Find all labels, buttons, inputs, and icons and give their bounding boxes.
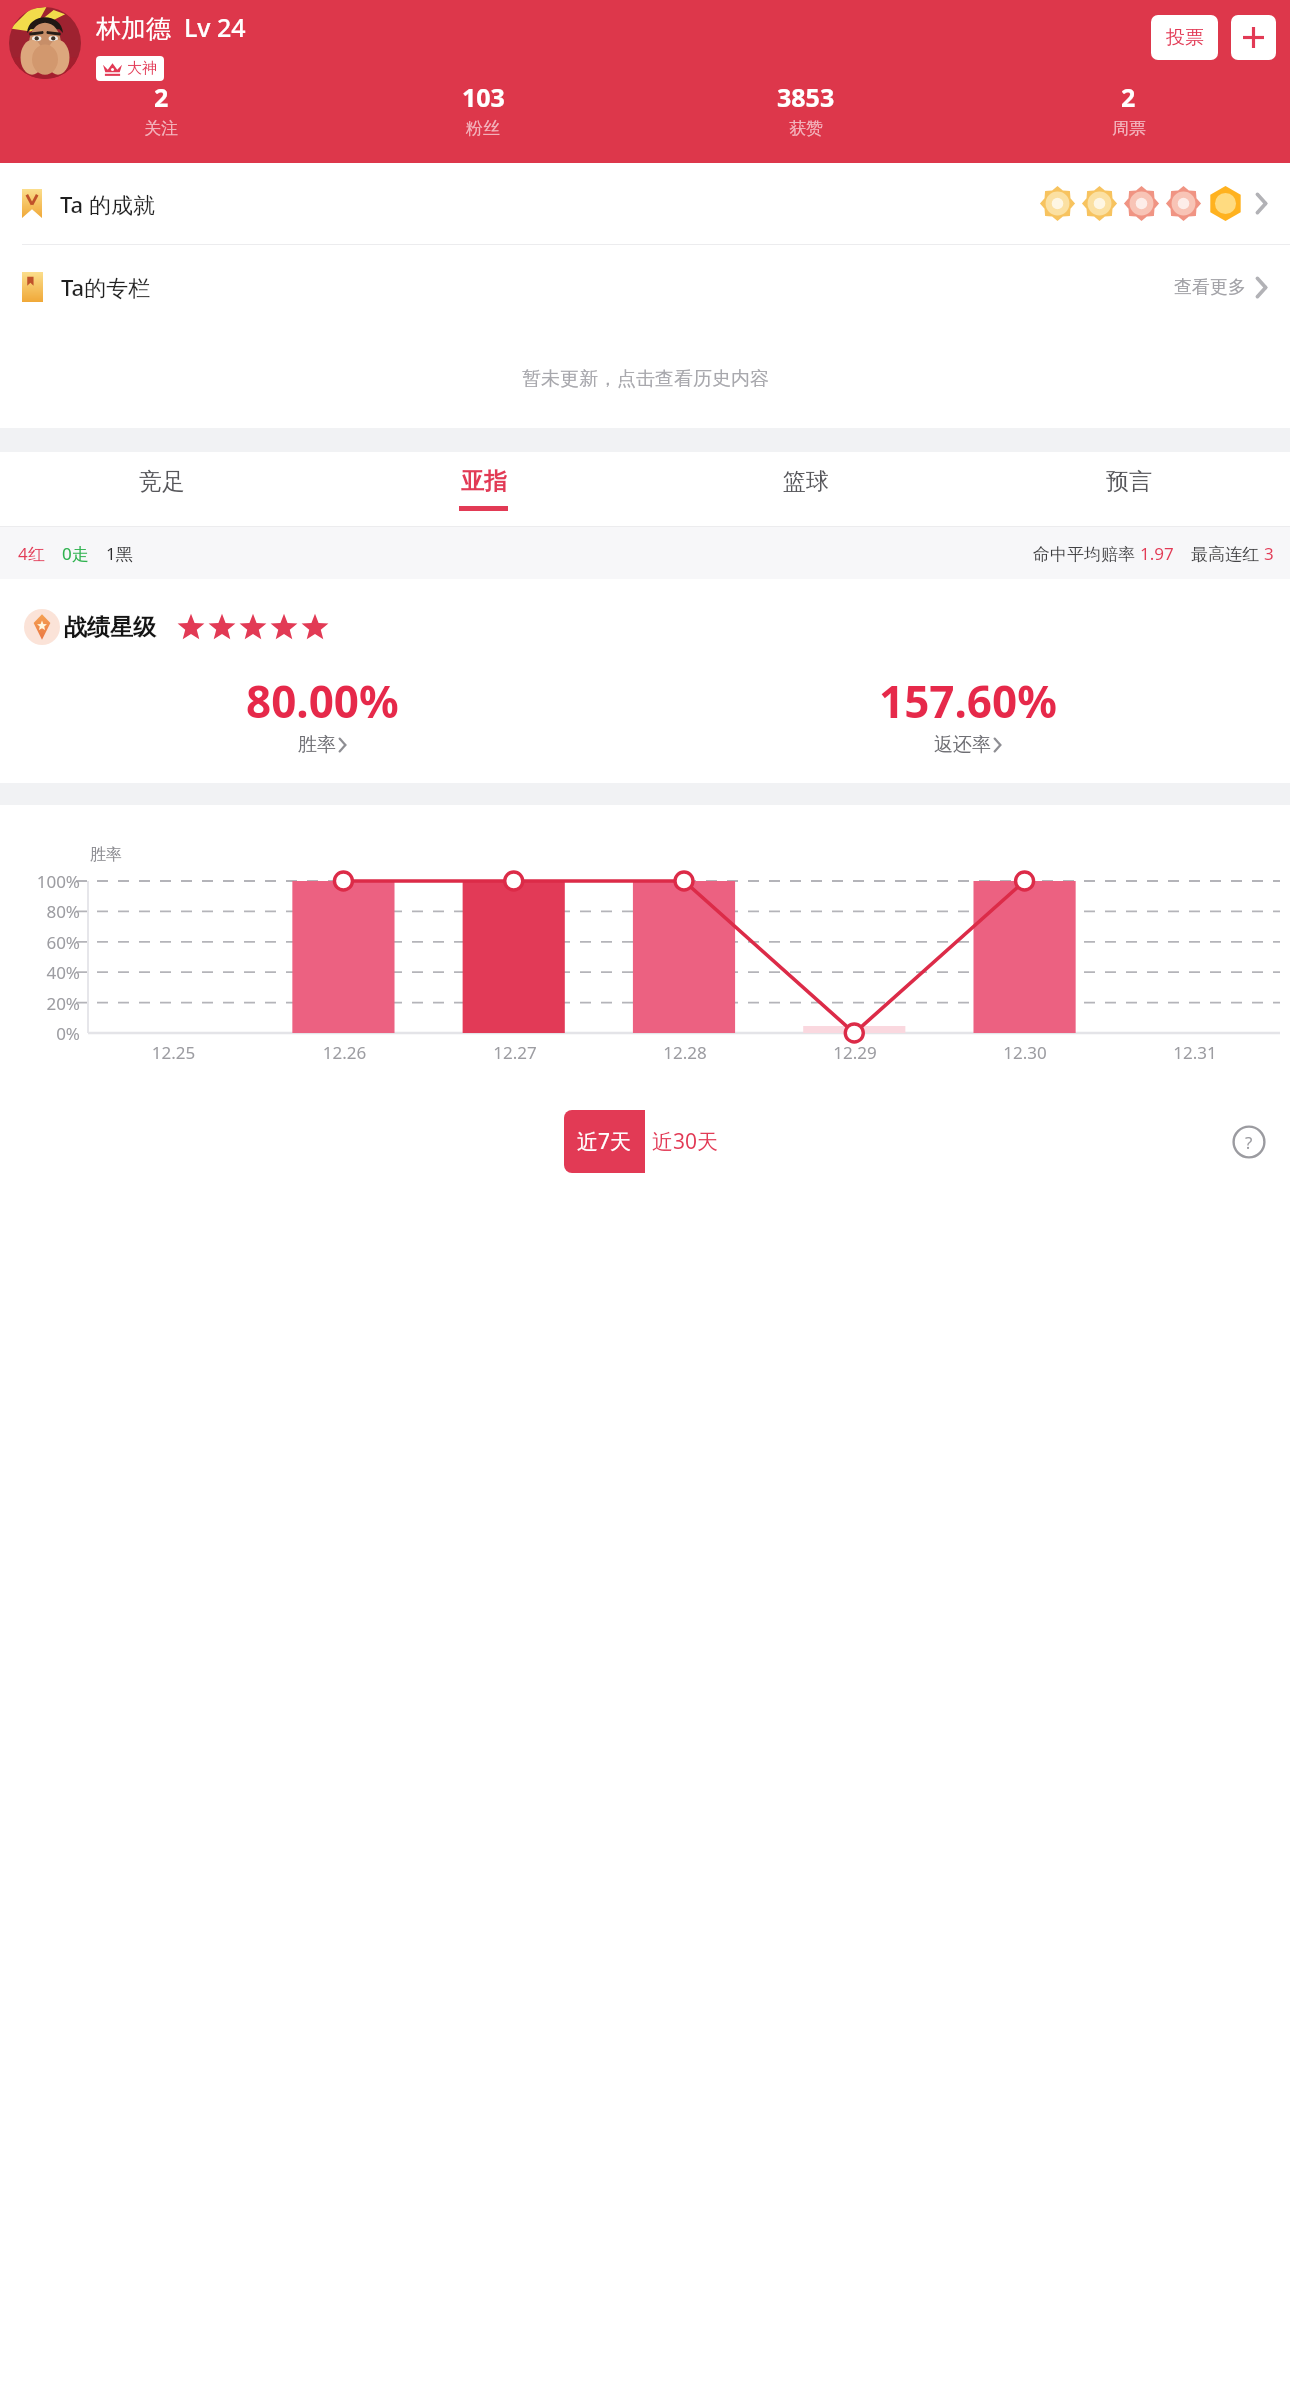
staticText: 返还率 — [934, 733, 991, 757]
staticText: 0% — [14, 1022, 80, 1045]
staticText: 胜率 — [298, 733, 336, 757]
staticText: 查看更多 — [1174, 276, 1246, 299]
staticText: 粉丝 — [466, 118, 500, 139]
staticText: 暂未更新，点击查看历史内容 — [522, 367, 769, 391]
staticText: 大神 — [127, 59, 157, 78]
button[interactable]: 2 — [0, 80, 322, 139]
button[interactable]: 投票 — [1151, 15, 1218, 60]
button[interactable]: Add — [1231, 15, 1276, 60]
staticText: 命中平均赔率 — [1033, 542, 1140, 565]
staticText: 周票 — [1112, 118, 1146, 139]
staticText: 战绩星级 — [64, 613, 156, 642]
button[interactable]: 157.60% — [645, 671, 1290, 757]
staticText: 100% — [14, 870, 80, 893]
staticText: 157.60% — [879, 671, 1057, 731]
button[interactable]: 亚指 — [322, 452, 644, 526]
button[interactable]: Ta 的成就 — [0, 163, 1290, 244]
staticText: 竞足 — [139, 467, 185, 496]
button[interactable]: 预言 — [967, 452, 1290, 526]
staticText: 12.29 — [770, 1041, 940, 1064]
staticText: 2 — [1121, 80, 1136, 114]
staticText: 103 — [462, 80, 505, 114]
staticText: 亚指 — [461, 467, 507, 496]
staticText: 0走 — [62, 542, 89, 565]
staticText: 12.25 — [88, 1041, 259, 1064]
staticText: 关注 — [144, 118, 178, 139]
staticText: 3 — [1264, 542, 1274, 565]
staticText: 4红 — [18, 542, 45, 565]
staticText: 20% — [14, 992, 80, 1015]
button[interactable]: Ta的专栏 — [0, 245, 1290, 329]
staticText: 60% — [14, 931, 80, 954]
button[interactable]: 103 — [322, 80, 644, 139]
staticText: 12.28 — [600, 1041, 770, 1064]
button[interactable]: Help — [1230, 1123, 1268, 1161]
staticText: 80% — [14, 900, 80, 923]
staticText: 12.31 — [1110, 1041, 1280, 1064]
staticText: 3853 — [777, 80, 835, 114]
staticText: 近30天 — [652, 1127, 719, 1156]
staticText: 2 — [154, 80, 169, 114]
button[interactable]: 近30天 — [645, 1110, 726, 1173]
button[interactable]: 大神 — [96, 56, 164, 81]
staticText: 获赞 — [789, 118, 823, 139]
staticText: 投票 — [1166, 26, 1204, 50]
staticText: 最高连红 — [1191, 542, 1264, 565]
button[interactable]: 3853 — [644, 80, 967, 139]
staticText: 篮球 — [783, 467, 829, 496]
staticText: 80.00% — [246, 671, 399, 731]
staticText: 近7天 — [577, 1127, 632, 1156]
staticText: 12.26 — [259, 1041, 430, 1064]
button[interactable]: 竞足 — [0, 452, 322, 526]
staticText: 40% — [14, 961, 80, 984]
staticText: 林加德 Lv 24 — [96, 10, 246, 44]
staticText: 胜率 — [90, 845, 122, 865]
button[interactable]: 篮球 — [644, 452, 967, 526]
staticText: 12.27 — [430, 1041, 600, 1064]
staticText: 12.30 — [940, 1041, 1110, 1064]
staticText: 1黑 — [106, 542, 133, 565]
staticText: 1.97 — [1140, 542, 1174, 565]
staticText: 预言 — [1106, 467, 1152, 496]
staticText: ? — [1245, 1131, 1253, 1154]
button[interactable]: 暂未更新，点击查看历史内容 — [0, 329, 1290, 428]
button[interactable]: 2 — [967, 80, 1290, 139]
staticText: Ta的专栏 — [61, 272, 151, 302]
button[interactable]: 80.00% — [0, 671, 645, 757]
button[interactable]: 近7天 — [564, 1110, 645, 1173]
staticText: Ta 的成就 — [60, 189, 155, 219]
